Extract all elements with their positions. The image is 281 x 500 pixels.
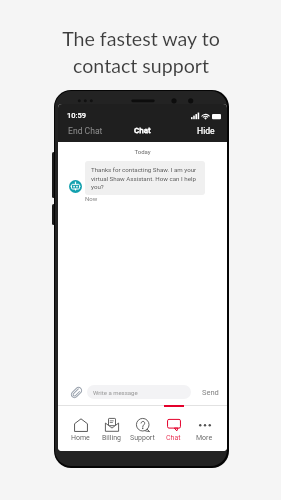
staticText: Chat	[166, 434, 181, 442]
staticText: Home	[71, 434, 90, 442]
button[interactable]: End Chat	[58, 124, 113, 138]
staticText: End Chat	[68, 126, 103, 136]
button[interactable]: Home	[65, 406, 96, 442]
staticText: Send	[202, 388, 219, 397]
staticText: 10:59	[67, 111, 87, 120]
button[interactable]: Support	[127, 406, 158, 442]
staticText: Today	[58, 148, 227, 155]
staticText: Thanks for contacting Shaw. I am your vi…	[91, 166, 199, 190]
button[interactable]: Chat	[158, 406, 189, 442]
button[interactable]: Send	[201, 385, 220, 400]
button[interactable]: More	[189, 406, 220, 442]
staticText: Hide	[197, 126, 215, 136]
staticText: Billing	[102, 434, 121, 442]
staticText: Chat	[134, 126, 151, 135]
staticText: More	[196, 434, 213, 442]
button[interactable]: Attach file	[69, 385, 83, 399]
staticText: Write a message	[93, 389, 138, 396]
staticText: Now	[85, 195, 98, 202]
button[interactable]: Billing	[96, 406, 127, 442]
staticText: The fastest way to contact support	[62, 27, 220, 78]
button[interactable]: Write a message	[87, 385, 191, 399]
button[interactable]: Hide	[185, 124, 227, 138]
staticText: Support	[130, 434, 155, 442]
